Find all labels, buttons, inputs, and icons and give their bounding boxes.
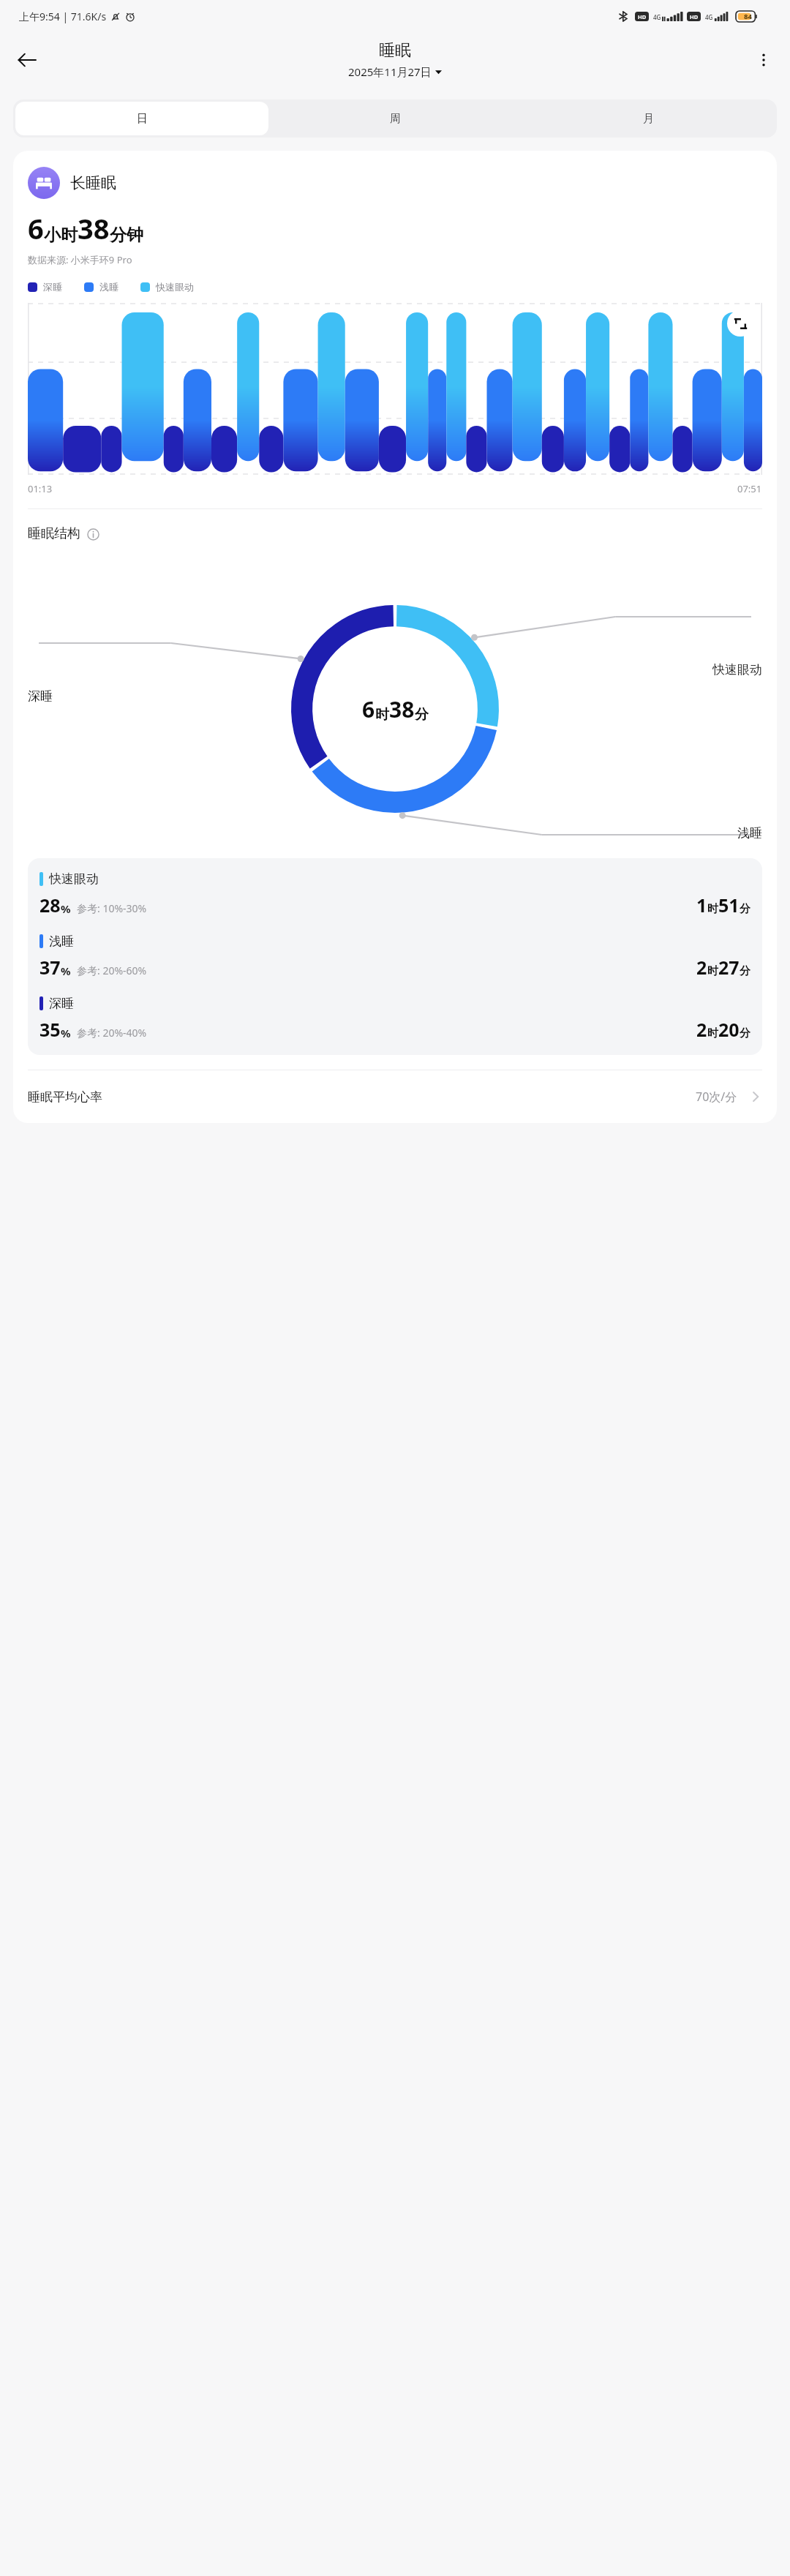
staticText: 38 [78,209,110,247]
staticText: 浅睡 [49,934,74,949]
button[interactable]: Expand chart [727,310,753,337]
staticText: 2 [696,955,707,980]
staticText: 浅睡 [99,281,118,293]
staticText: % [61,1026,71,1040]
staticText: 2025年11月27日 [348,64,432,79]
staticText: 上午9:54 | 71.6K/s [19,10,107,23]
staticText: 01:13 [28,482,53,495]
staticText: 深睡 [43,281,62,293]
staticText: 分 [415,706,429,724]
staticText: 快速眼动 [49,871,99,887]
staticText: 分 [740,1026,750,1040]
staticText: 20 [718,1017,740,1042]
button[interactable]: Back [9,42,45,78]
staticText: 2 [696,1017,707,1042]
staticText: HD [690,13,699,20]
staticText: 快速眼动 [712,662,762,677]
staticText: 35 [39,1017,61,1042]
staticText: 日 [137,112,148,126]
staticText: % [61,901,71,916]
staticText: 84 [744,12,752,21]
staticText: 参考: 10%-30% [77,901,147,915]
staticText: % [61,964,71,978]
staticText: 数据来源: 小米手环9 Pro [28,253,132,266]
staticText: 快速眼动 [156,281,194,293]
staticText: 浅睡 [737,825,762,841]
staticText: 07:51 [737,482,762,495]
button[interactable]: 日 [15,102,268,135]
button[interactable]: Info about sleep structure [86,527,100,541]
staticText: 37 [39,955,61,980]
staticText: 周 [390,112,401,126]
staticText: 4G [653,13,661,21]
staticText: 时 [707,964,718,978]
staticText: 70次/分 [696,1089,737,1105]
staticText: 小时 [44,225,78,246]
staticText: 分钟 [110,225,143,246]
staticText: 27 [718,955,740,980]
staticText: 时 [707,902,718,916]
staticText: 1 [696,893,707,917]
staticText: 睡眠平均心率 [28,1089,102,1105]
staticText: 深睡 [49,996,74,1011]
staticText: 分 [740,902,750,916]
staticText: 月 [643,112,654,126]
staticText: 长睡眠 [70,173,116,192]
staticText: 28 [39,893,61,917]
staticText: 6 [362,694,375,724]
staticText: 睡眠结构 [28,525,80,542]
staticText: 分 [740,964,750,978]
staticText: 51 [718,893,740,917]
staticText: 6 [28,209,44,247]
button[interactable]: 月 [522,102,775,135]
staticText: HD [638,13,647,20]
staticText: 时 [375,706,389,724]
staticText: 参考: 20%-40% [77,1026,147,1040]
staticText: 参考: 20%-60% [77,964,147,977]
staticText: 深睡 [28,688,53,704]
button[interactable]: More options [746,42,781,78]
staticText: 睡眠 [379,40,411,61]
button[interactable]: 周 [268,102,522,135]
staticText: 4G [705,13,713,21]
button[interactable]: 睡眠平均心率 [28,1070,762,1123]
staticText: 38 [389,694,415,724]
staticText: 时 [707,1026,718,1040]
button[interactable]: 2025年11月27日 [345,64,445,80]
